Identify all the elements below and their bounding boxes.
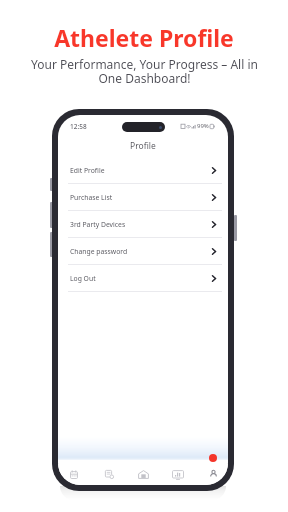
staticText: 12:58	[70, 122, 87, 131]
staticText: Log Out	[70, 274, 96, 283]
staticText: 99%	[197, 122, 209, 130]
button[interactable]: Profile	[202, 464, 224, 485]
button[interactable]: 3rd Party Devices	[58, 212, 228, 238]
staticText: Your Performance, Your Progress – All in…	[31, 56, 258, 87]
staticText: Profile	[130, 140, 156, 152]
staticText: Athelete Profile	[54, 22, 234, 53]
button[interactable]: Edit Profile	[58, 158, 228, 184]
button[interactable]: Change password	[58, 239, 228, 265]
staticText: Change password	[70, 247, 128, 256]
button[interactable]: Home	[132, 464, 154, 485]
staticText: 3rd Party Devices	[70, 220, 126, 229]
button[interactable]: Log Out	[58, 266, 228, 292]
staticText: Purchase List	[70, 193, 113, 202]
button[interactable]: Reports	[98, 464, 120, 485]
staticText: Edit Profile	[70, 166, 105, 175]
button[interactable]: Purchase List	[58, 185, 228, 211]
button[interactable]: Stats	[167, 464, 189, 485]
button[interactable]: Calendar	[63, 464, 85, 485]
